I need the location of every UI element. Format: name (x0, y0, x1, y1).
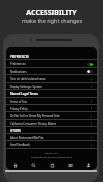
button[interactable]: Send Feedback (6, 141, 97, 149)
button[interactable]: Do Not Sell or Share My Personal Info (6, 112, 97, 120)
staticText: Send Feedback (10, 143, 30, 147)
button[interactable]: Preferences (6, 60, 97, 68)
staticText: Preferences (10, 62, 26, 66)
button[interactable]: Display Settings: System (6, 83, 97, 90)
staticText: OTHERS (10, 129, 21, 133)
staticText: Notifications (10, 70, 27, 74)
staticText: Do Not Sell or Share My Personal Info (10, 114, 60, 118)
button[interactable]: OTHERS (6, 127, 97, 134)
button[interactable]: Privacy Policy (6, 105, 97, 112)
button[interactable]: Rewards (61, 160, 79, 170)
button[interactable]: Switch off (87, 70, 93, 73)
button[interactable]: California Consumer Privacy Notice (6, 120, 97, 127)
button[interactable]: Notifications (6, 68, 97, 75)
staticText: Manual Legal Terms (10, 92, 38, 96)
staticText: Privacy Policy (10, 107, 28, 111)
staticText: Terms of Use (10, 100, 28, 104)
button[interactable]: PREFERENCES (6, 53, 97, 60)
button[interactable]: Account (79, 160, 97, 170)
button[interactable]: Terms of Use (6, 98, 97, 105)
staticText: Version 1.0.0 Restaurant app all rights … (31, 152, 72, 158)
button[interactable]: Search (24, 160, 42, 170)
button[interactable]: Switch on (87, 63, 93, 66)
staticText: make the right changes (22, 17, 82, 24)
button[interactable]: About Restaurant/BioPita (6, 134, 97, 141)
staticText: Display Settings: System (10, 85, 42, 89)
staticText: Turn on dark/colored cases (10, 77, 46, 81)
staticText: About Restaurant/BioPita (10, 136, 44, 140)
staticText: PREFERENCES (10, 55, 29, 59)
staticText: ACCESSIBILITY (26, 8, 77, 18)
button[interactable]: Manual Legal Terms (6, 90, 97, 98)
button[interactable]: Turn on dark/colored cases (6, 75, 97, 83)
button[interactable]: Home (6, 160, 24, 170)
staticText: California Consumer Privacy Notice (10, 122, 57, 126)
button[interactable]: Order (43, 160, 61, 170)
